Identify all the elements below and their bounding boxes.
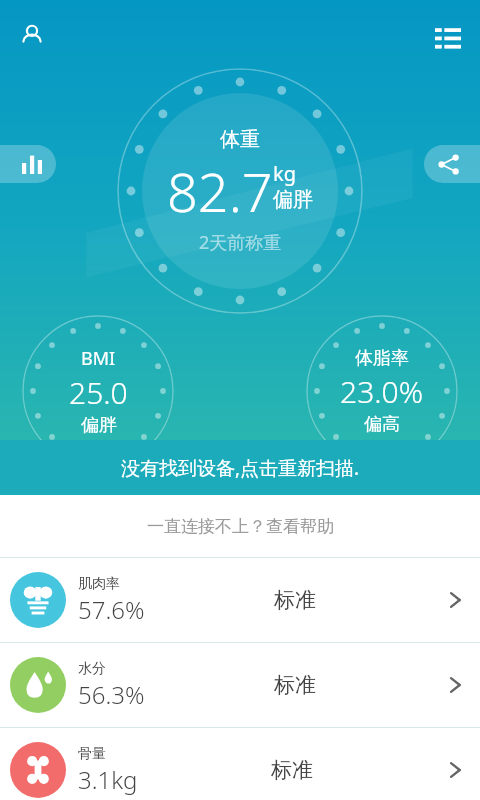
staticText: 体重 [220,127,260,152]
staticText: 82.7 [167,154,273,228]
button[interactable]: 一直连接不上？查看帮助 [0,495,480,557]
button[interactable]: 水分 [0,643,480,727]
staticText: 偏高 [364,413,400,436]
staticText: 56.3% [78,678,145,711]
staticText: 偏胖 [81,414,117,437]
staticText: 肌肉率 [78,575,120,593]
staticText: 57.6% [78,593,145,626]
button[interactable]: 没有找到设备,点击重新扫描. [0,440,480,495]
button[interactable]: Share [424,145,480,183]
staticText: 骨量 [78,745,106,763]
button[interactable]: 体重 [117,68,363,314]
staticText: 25.0 [69,372,128,413]
staticText: 标准 [274,587,316,613]
button[interactable]: 骨量 [0,728,480,800]
staticText: 没有找到设备,点击重新扫描. [121,455,360,481]
staticText: 体脂率 [355,347,409,370]
staticText: 水分 [78,660,106,678]
staticText: kg [273,160,296,187]
button[interactable]: 体脂率 [306,315,458,467]
staticText: BMI [81,346,116,371]
button[interactable]: 肌肉率 [0,558,480,642]
staticText: 偏胖 [273,187,313,212]
staticText: 标准 [271,757,313,783]
button[interactable]: Chart [0,145,56,183]
staticText: 23.0% [340,371,424,412]
staticText: 3.1kg [78,763,138,796]
staticText: 一直连接不上？查看帮助 [147,516,334,537]
button[interactable]: Menu [424,12,472,60]
button[interactable]: Profile [8,12,56,60]
staticText: 标准 [274,672,316,698]
button[interactable]: BMI [22,315,174,467]
staticText: 2天前称重 [199,230,282,255]
